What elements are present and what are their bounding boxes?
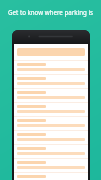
button[interactable] bbox=[14, 116, 88, 130]
button[interactable] bbox=[14, 130, 88, 144]
button[interactable] bbox=[14, 158, 88, 172]
button[interactable] bbox=[14, 102, 88, 116]
button[interactable] bbox=[14, 144, 88, 158]
button[interactable] bbox=[14, 74, 88, 88]
button[interactable] bbox=[14, 60, 88, 74]
button[interactable] bbox=[14, 88, 88, 102]
staticText: Get to know where parking is bbox=[5, 8, 96, 16]
button[interactable] bbox=[14, 172, 88, 180]
button[interactable]: Search parking bbox=[17, 48, 85, 56]
